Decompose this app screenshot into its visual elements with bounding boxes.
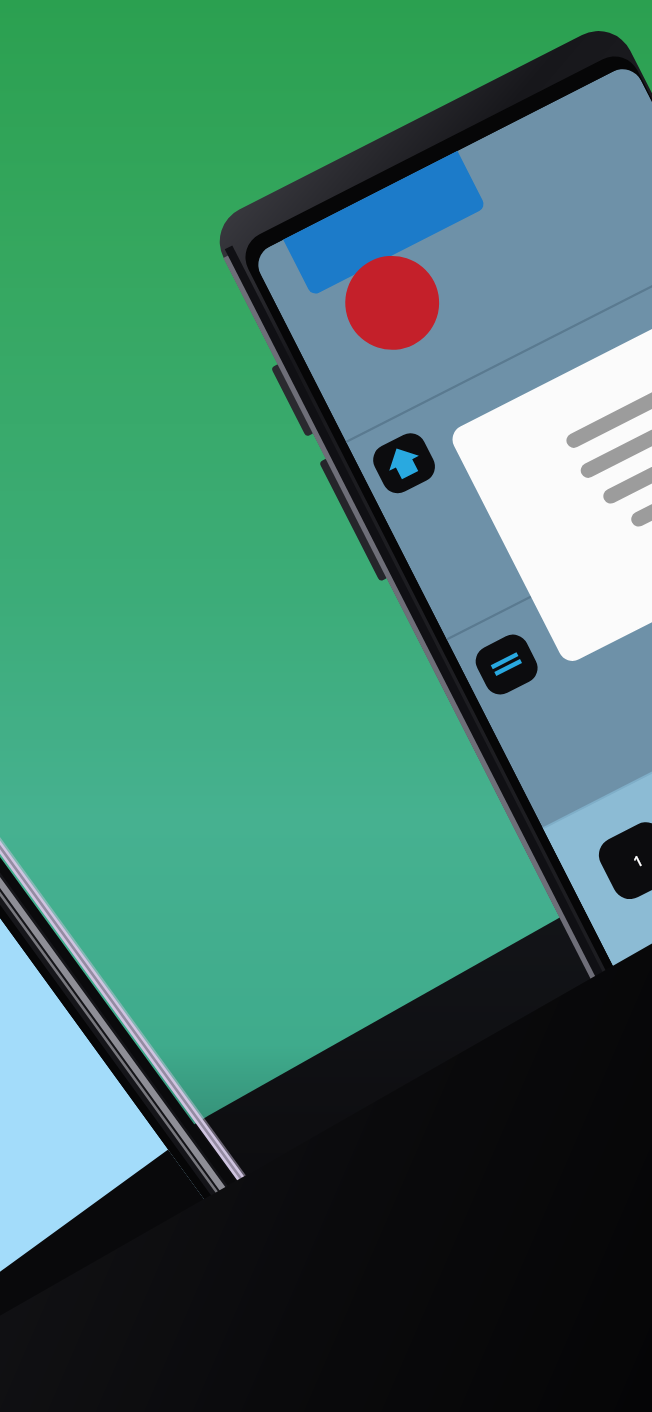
- button[interactable]: Two phones displaying app screens: [0, 0, 652, 1412]
